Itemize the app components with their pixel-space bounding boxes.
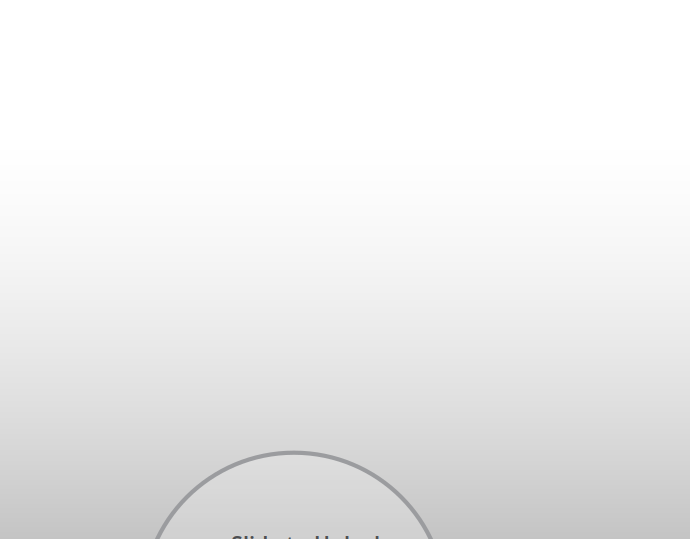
- staticText: Slide to Unlock: [231, 529, 387, 539]
- button[interactable]: Slide to Unlock: [142, 453, 445, 539]
